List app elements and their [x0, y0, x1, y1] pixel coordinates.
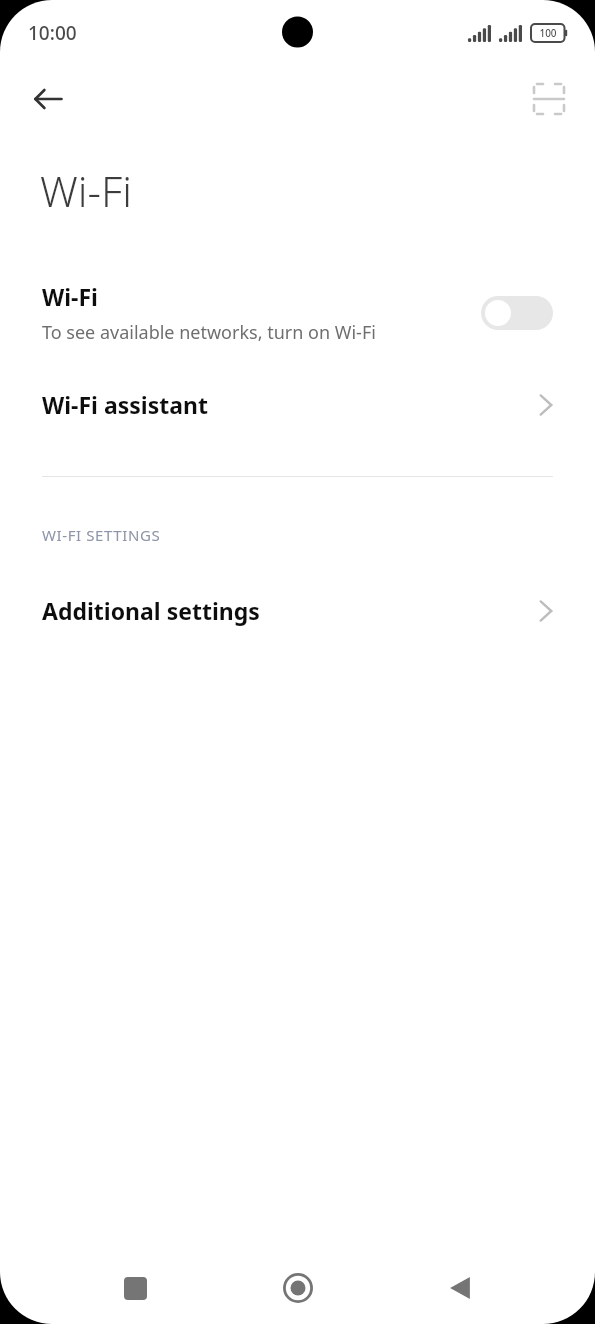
staticText: 10:00	[28, 20, 77, 46]
staticText: WI-FI SETTINGS	[42, 525, 161, 545]
staticText: Wi-Fi	[40, 162, 132, 219]
button[interactable]: Back	[432, 1260, 488, 1316]
button[interactable]: Back	[24, 75, 72, 123]
button[interactable]: Wi-Fi toggle, off	[481, 296, 553, 330]
button[interactable]: Additional settings	[0, 587, 595, 634]
button[interactable]: Recent apps	[107, 1260, 163, 1316]
staticText: Wi-Fi assistant	[42, 389, 208, 420]
button[interactable]: Wi-Fi	[0, 275, 595, 351]
staticText: Wi-Fi	[42, 281, 98, 312]
button[interactable]: Home	[270, 1260, 326, 1316]
button[interactable]: Scan QR code	[525, 75, 573, 123]
button[interactable]: Wi-Fi assistant	[0, 381, 595, 428]
staticText: Additional settings	[42, 595, 260, 626]
staticText: 100	[539, 26, 557, 40]
staticText: To see available networks, turn on Wi-Fi	[42, 320, 376, 345]
